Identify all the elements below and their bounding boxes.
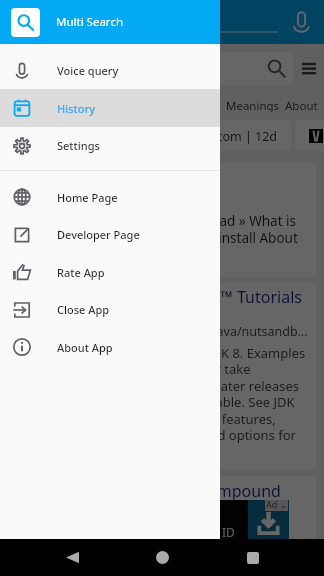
staticText: Settings — [57, 138, 100, 153]
staticText: might use available. See JDK — [180, 393, 259, 411]
staticText: Close App — [57, 302, 110, 317]
staticText: for deprecated options for — [180, 426, 271, 444]
staticText: Rate App — [57, 265, 105, 280]
staticText: Voice query — [57, 63, 119, 78]
staticText: Java? Uninstall About — [180, 229, 298, 247]
button[interactable]: Recent apps — [234, 539, 272, 576]
button[interactable]: Back — [53, 539, 91, 576]
button[interactable]: Voice query — [0, 52, 220, 89]
staticText: Release Notes features, — [180, 410, 268, 428]
button[interactable]: Home Page — [0, 178, 220, 216]
staticText: and practices don't take — [180, 360, 241, 378]
button[interactable]: Settings — [0, 127, 220, 164]
staticText: softpedia.com | 12d — [180, 128, 269, 145]
staticText: Java™ Tutorials — [190, 286, 302, 308]
staticText: History — [57, 101, 95, 116]
button[interactable]: Close App — [0, 291, 220, 328]
staticText: Multi Search — [56, 14, 124, 30]
staticText: e/tutorial/java/nutsandb… — [180, 323, 290, 340]
staticText: ID — [222, 524, 235, 540]
button[interactable]: Voice search — [286, 7, 316, 37]
staticText: Meanings — [226, 98, 280, 114]
button[interactable]: Multi Search — [0, 0, 220, 44]
staticText: About App — [57, 340, 113, 355]
staticText: Ad ⌄ — [266, 498, 288, 509]
staticText: Compound — [197, 480, 281, 502]
staticText: advantage of in later releases — [180, 377, 255, 395]
button[interactable]: Developer Page — [0, 216, 220, 253]
button[interactable]: About App — [0, 328, 220, 366]
button[interactable]: History — [0, 89, 220, 127]
button[interactable]: Home — [143, 539, 181, 576]
staticText: Multi Search — [56, 14, 124, 30]
staticText: Deprecated in JDK 8. Examples — [180, 344, 255, 362]
button[interactable]: Rate App — [0, 253, 220, 291]
staticText: Developer Page — [57, 227, 140, 242]
staticText: About — [285, 98, 318, 114]
staticText: Free Download » What is — [180, 212, 276, 230]
staticText: Home Page — [57, 190, 118, 205]
